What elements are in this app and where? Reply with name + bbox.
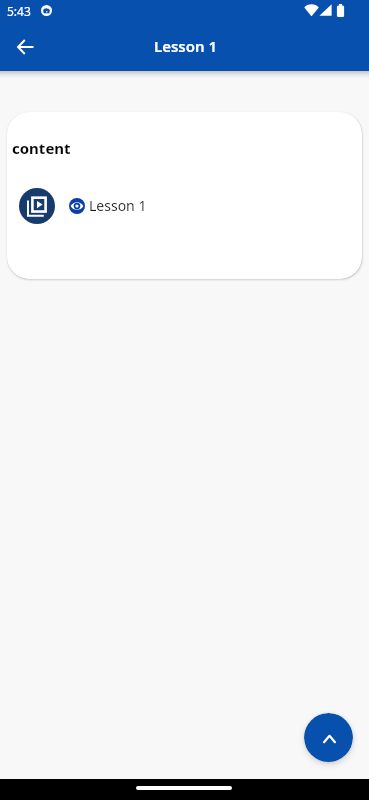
staticText: Lesson 1 [154, 36, 218, 56]
button[interactable]: Scroll to top [304, 713, 353, 762]
staticText: Lesson 1 [89, 196, 147, 215]
staticText: 5:43 [7, 3, 31, 19]
button[interactable]: Back [5, 27, 45, 67]
button[interactable]: Lesson 1 [7, 186, 362, 226]
staticText: content [12, 138, 71, 158]
